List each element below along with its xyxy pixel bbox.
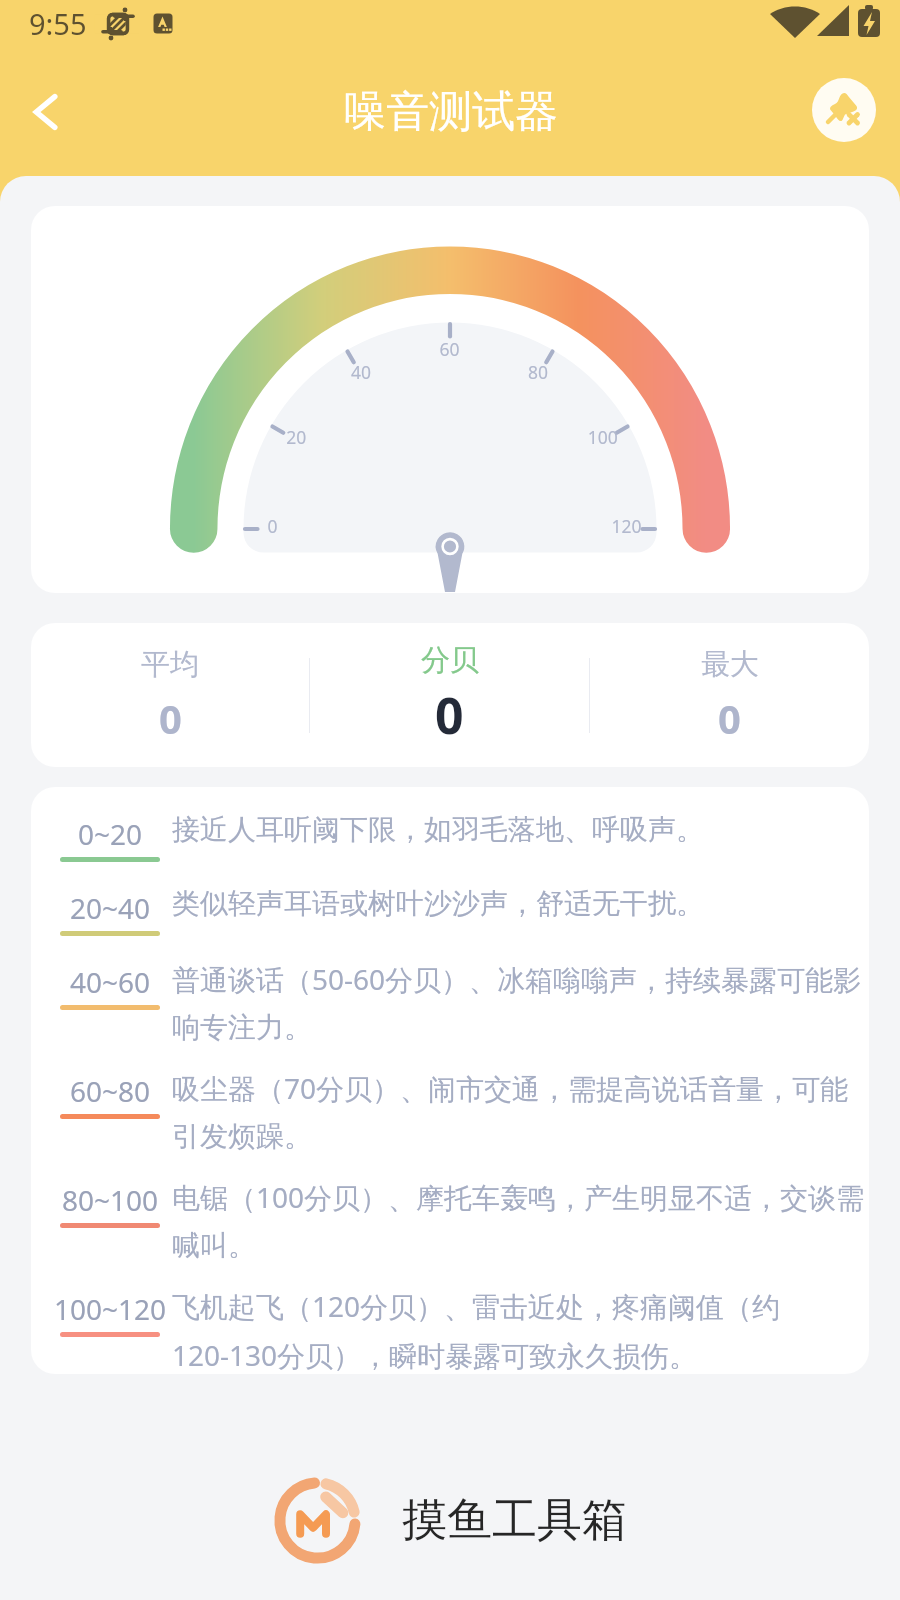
staticText: 噪音测试器: [343, 85, 558, 139]
staticText: 0~20: [78, 815, 143, 853]
staticText: 40~60: [70, 963, 151, 1001]
button[interactable]: 60~80: [60, 1069, 869, 1154]
staticText: 接近人耳听阈下限，如羽毛落地、呼吸声。: [172, 812, 704, 847]
staticText: 平均: [141, 646, 199, 683]
staticText: 类似轻声耳语或树叶沙沙声，舒适无干扰。: [172, 886, 704, 921]
button[interactable]: 20~40: [60, 886, 869, 936]
button[interactable]: 平均: [31, 646, 309, 745]
button[interactable]: 100~120: [60, 1287, 869, 1374]
staticText: 摸鱼工具箱: [402, 1492, 627, 1549]
staticText: 20~40: [70, 889, 151, 927]
staticText: 最大: [701, 646, 759, 683]
button[interactable]: 最大: [590, 646, 869, 745]
button[interactable]: 0~20: [60, 812, 869, 862]
staticText: 电锯（100分贝）、摩托车轰鸣，产生明显不适，交谈需喊叫。: [172, 1178, 869, 1263]
button[interactable]: 取消置顶: [812, 78, 876, 142]
staticText: 飞机起飞（120分贝）、雷击近处，疼痛阈值（约120-130分贝），瞬时暴露可致…: [172, 1287, 869, 1374]
staticText: 100~120: [54, 1290, 167, 1328]
staticText: 60~80: [70, 1072, 151, 1110]
button[interactable]: 分贝: [310, 642, 589, 749]
staticText: 普通谈话（50-60分贝）、冰箱嗡嗡声，持续暴露可能影响专注力。: [172, 960, 869, 1045]
staticText: 0: [435, 681, 464, 749]
staticText: 分贝: [421, 642, 479, 679]
button[interactable]: 80~100: [60, 1178, 869, 1263]
staticText: 吸尘器（70分贝）、闹市交通，需提高说话音量，可能引发烦躁。: [172, 1069, 869, 1154]
staticText: 0: [159, 691, 182, 745]
button[interactable]: 返回: [8, 74, 84, 150]
button[interactable]: 40~60: [60, 960, 869, 1045]
staticText: 9:55: [29, 4, 87, 43]
button[interactable]: 摸鱼工具箱: [0, 1477, 900, 1564]
staticText: 0: [718, 691, 741, 745]
staticText: 80~100: [62, 1181, 159, 1219]
